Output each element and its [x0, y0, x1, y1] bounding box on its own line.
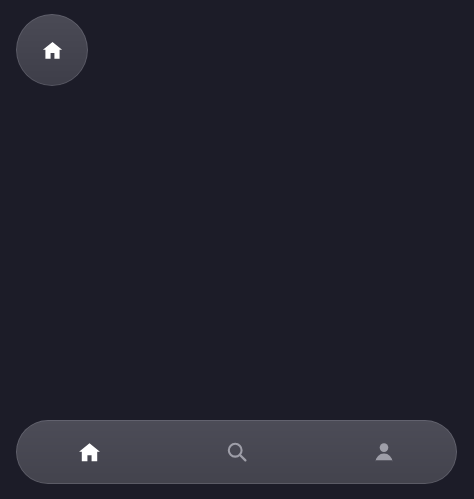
- button[interactable]: Home: [16, 14, 88, 86]
- button[interactable]: Home: [16, 420, 163, 484]
- button[interactable]: Profile: [310, 420, 457, 484]
- button[interactable]: Search: [163, 420, 310, 484]
